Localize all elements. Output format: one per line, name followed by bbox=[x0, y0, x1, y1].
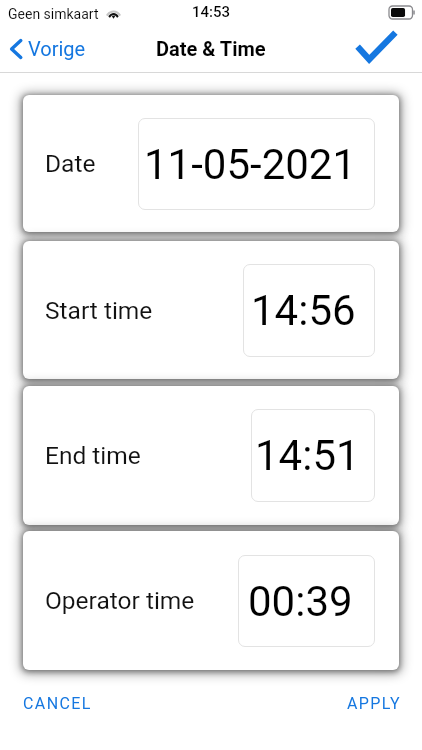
button[interactable]: APPLY bbox=[331, 689, 422, 720]
staticText: Date bbox=[45, 149, 96, 178]
button[interactable]: 14:56 bbox=[243, 264, 375, 357]
staticText: 14:56 bbox=[251, 286, 356, 335]
button[interactable]: Start time bbox=[23, 241, 399, 379]
staticText: Operator time bbox=[45, 586, 195, 615]
button[interactable]: Date bbox=[23, 95, 399, 232]
staticText: 11-05-2021 bbox=[144, 140, 357, 189]
button[interactable]: CANCEL bbox=[0, 689, 108, 720]
button[interactable]: 14:51 bbox=[251, 409, 375, 502]
staticText: Geen simkaart bbox=[8, 6, 99, 22]
staticText: End time bbox=[45, 441, 141, 470]
staticText: CANCEL bbox=[23, 694, 92, 713]
button[interactable]: 00:39 bbox=[238, 555, 375, 647]
staticText: Date & Time bbox=[156, 37, 266, 60]
button[interactable]: Operator time bbox=[23, 531, 399, 670]
staticText: APPLY bbox=[347, 694, 401, 713]
button[interactable]: Vorige bbox=[0, 32, 94, 65]
staticText: Vorige bbox=[28, 37, 86, 60]
staticText: 00:39 bbox=[248, 577, 353, 626]
staticText: Start time bbox=[45, 296, 153, 325]
button[interactable]: 11-05-2021 bbox=[138, 118, 375, 210]
staticText: 14:53 bbox=[192, 3, 231, 21]
button[interactable]: End time bbox=[23, 386, 399, 525]
button[interactable]: Done bbox=[343, 30, 422, 70]
staticText: 14:51 bbox=[255, 431, 360, 480]
